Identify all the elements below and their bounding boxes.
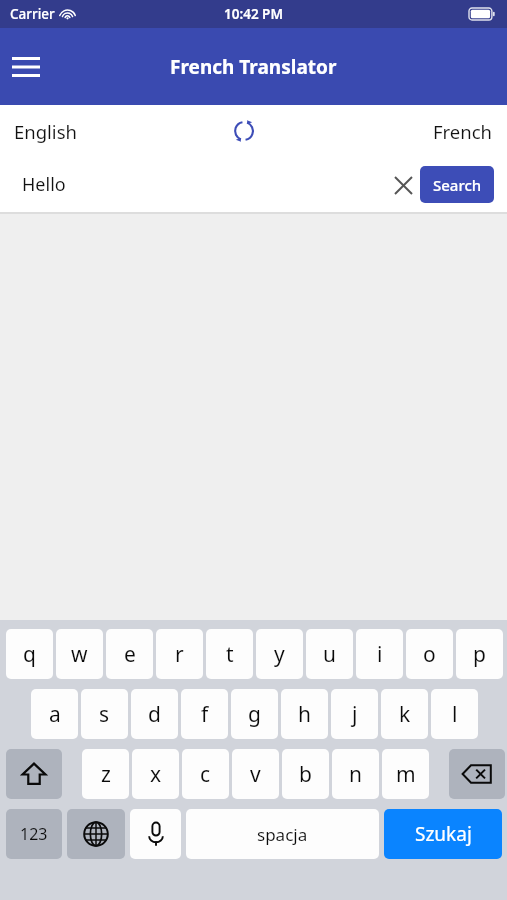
button[interactable]: q (6, 629, 53, 679)
button[interactable]: e (106, 629, 153, 679)
staticText: w (71, 640, 88, 669)
button[interactable]: s (81, 689, 128, 739)
staticText: e (124, 640, 136, 669)
button[interactable]: Search (420, 166, 494, 203)
other: Voice input (147, 821, 165, 847)
button[interactable]: Swap languages (224, 111, 264, 151)
staticText: Szukaj (415, 821, 472, 847)
button[interactable]: w (56, 629, 103, 679)
staticText: 10:42 PM (224, 5, 283, 23)
button[interactable]: y (256, 629, 303, 679)
staticText: p (473, 640, 486, 669)
button[interactable]: key (6, 749, 62, 799)
staticText: m (396, 760, 416, 789)
staticText: a (49, 700, 61, 729)
button[interactable]: d (131, 689, 178, 739)
staticText: i (377, 640, 383, 669)
staticText: j (352, 700, 358, 729)
staticText: t (226, 640, 234, 669)
button[interactable]: English (14, 119, 77, 144)
other: Shift (21, 761, 47, 787)
staticText: q (23, 640, 36, 669)
staticText: z (101, 760, 111, 789)
staticText: h (298, 700, 311, 729)
staticText: r (175, 640, 184, 669)
staticText: u (323, 640, 336, 669)
button[interactable]: a (31, 689, 78, 739)
staticText: b (299, 760, 312, 789)
staticText: o (423, 640, 436, 669)
staticText: n (349, 760, 362, 789)
staticText: y (274, 640, 285, 669)
button[interactable]: Menu (0, 41, 52, 93)
staticText: v (250, 760, 261, 789)
button[interactable]: f (181, 689, 228, 739)
button[interactable]: 123 (6, 809, 62, 859)
staticText: Search (433, 175, 482, 195)
button[interactable]: key (130, 809, 181, 859)
other: Backspace (462, 763, 492, 785)
button[interactable]: n (332, 749, 379, 799)
staticText: Hello (22, 172, 66, 197)
button[interactable]: key (449, 749, 505, 799)
staticText: x (150, 760, 162, 789)
button[interactable]: k (381, 689, 428, 739)
button[interactable]: j (331, 689, 378, 739)
button[interactable]: g (231, 689, 278, 739)
button[interactable]: Szukaj (384, 809, 502, 859)
staticText: l (452, 700, 458, 729)
button[interactable]: z (82, 749, 129, 799)
staticText: Carrier (10, 5, 55, 23)
button[interactable]: m (382, 749, 429, 799)
button[interactable]: l (431, 689, 478, 739)
staticText: s (99, 700, 110, 729)
button[interactable]: spacja (186, 809, 379, 859)
other: Change keyboard language (83, 821, 109, 847)
button[interactable]: x (132, 749, 179, 799)
staticText: c (200, 760, 211, 789)
staticText: f (201, 700, 209, 729)
staticText: d (148, 700, 161, 729)
staticText: French Translator (170, 54, 337, 80)
button[interactable]: b (282, 749, 329, 799)
button[interactable]: o (406, 629, 453, 679)
button[interactable]: Clear (383, 165, 423, 205)
button[interactable]: p (456, 629, 503, 679)
button[interactable]: r (156, 629, 203, 679)
button[interactable]: t (206, 629, 253, 679)
button[interactable]: v (232, 749, 279, 799)
button[interactable]: key (67, 809, 125, 859)
staticText: spacja (257, 823, 308, 846)
staticText: 123 (20, 823, 48, 845)
staticText: k (399, 700, 411, 729)
button[interactable]: c (182, 749, 229, 799)
button[interactable]: French (433, 119, 493, 144)
button[interactable]: u (306, 629, 353, 679)
button[interactable]: h (281, 689, 328, 739)
staticText: g (248, 700, 261, 729)
button[interactable]: i (356, 629, 403, 679)
